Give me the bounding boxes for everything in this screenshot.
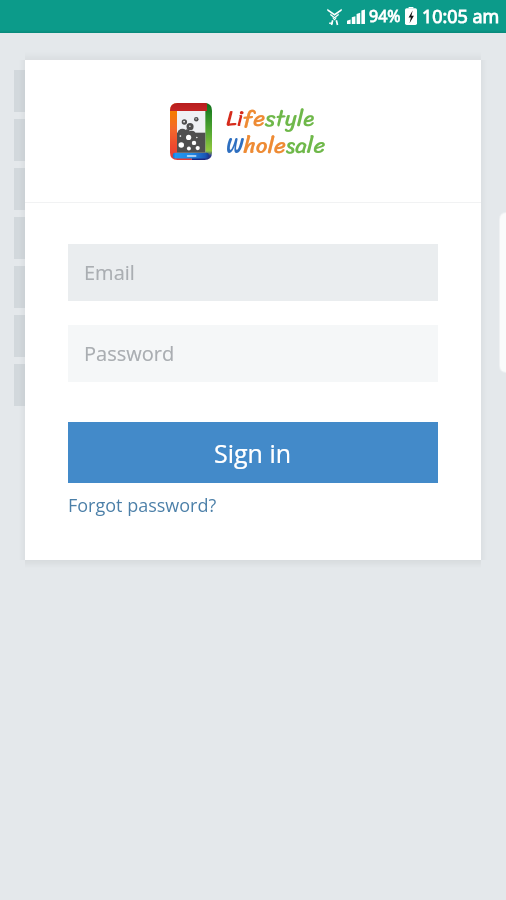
staticText: Password: [84, 340, 175, 367]
staticText: 94%: [369, 5, 401, 27]
button[interactable]: Password: [68, 325, 438, 382]
button[interactable]: Forgot password?: [68, 489, 217, 522]
staticText: Lifestyle Wholesale: [226, 98, 326, 165]
staticText: Sign in: [214, 436, 292, 470]
button[interactable]: Email: [68, 244, 438, 301]
button[interactable]: Sign in: [68, 422, 438, 483]
staticText: Email: [84, 259, 135, 286]
staticText: 10:05 am: [422, 4, 500, 29]
staticText: Forgot password?: [68, 493, 217, 518]
